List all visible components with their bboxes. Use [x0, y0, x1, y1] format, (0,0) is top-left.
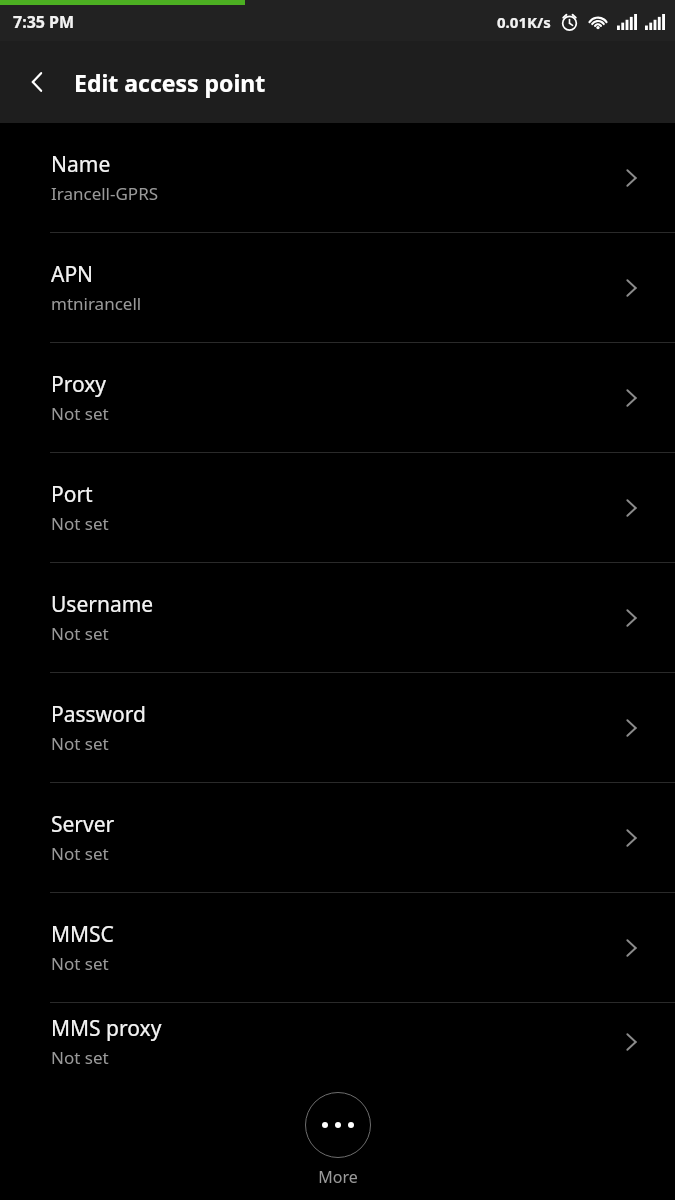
button[interactable]: Server: [0, 783, 675, 892]
staticText: Edit access point: [74, 67, 266, 98]
staticText: Not set: [51, 952, 109, 975]
staticText: Username: [51, 590, 154, 619]
button[interactable]: Back: [14, 58, 62, 106]
staticText: Server: [51, 810, 115, 839]
staticText: Irancell-GPRS: [51, 182, 159, 205]
staticText: Not set: [51, 732, 109, 755]
staticText: Proxy: [51, 370, 107, 399]
button[interactable]: More: [305, 1092, 371, 1188]
button[interactable]: Username: [0, 563, 675, 672]
other: More: [305, 1092, 371, 1158]
staticText: APN: [51, 260, 94, 289]
button[interactable]: MMS proxy: [0, 1003, 675, 1080]
staticText: MMSC: [51, 920, 114, 949]
staticText: 0.01K/s: [497, 12, 551, 32]
staticText: Port: [51, 480, 93, 509]
button[interactable]: Password: [0, 673, 675, 782]
button[interactable]: Port: [0, 453, 675, 562]
staticText: Name: [51, 150, 111, 179]
staticText: More: [318, 1166, 358, 1188]
button[interactable]: MMSC: [0, 893, 675, 1002]
staticText: Not set: [51, 512, 109, 535]
staticText: Password: [51, 700, 146, 729]
staticText: Not set: [51, 842, 109, 865]
button[interactable]: Name: [0, 123, 675, 232]
staticText: MMS proxy: [51, 1014, 162, 1043]
button[interactable]: APN: [0, 233, 675, 342]
staticText: Not set: [51, 622, 109, 645]
staticText: mtnirancell: [51, 292, 142, 315]
staticText: 7:35 PM: [13, 11, 75, 33]
button[interactable]: Proxy: [0, 343, 675, 452]
staticText: Not set: [51, 1046, 109, 1069]
staticText: Not set: [51, 402, 109, 425]
